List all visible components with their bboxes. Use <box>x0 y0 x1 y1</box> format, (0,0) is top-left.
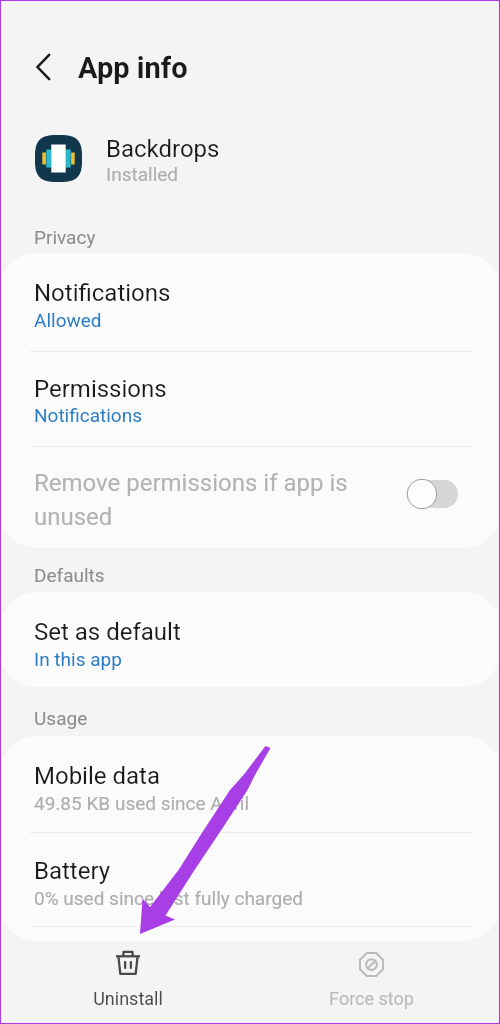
button[interactable]: Set as default <box>0 598 500 676</box>
staticText: Privacy <box>34 226 96 248</box>
staticText: Set as default <box>34 618 181 646</box>
button[interactable]: Permissions <box>0 355 500 433</box>
staticText: Usage <box>34 707 88 729</box>
button[interactable]: Mobile data <box>0 742 500 820</box>
staticText: Uninstall <box>93 988 163 1009</box>
button[interactable]: Force stop <box>289 942 453 1022</box>
staticText: Notifications <box>34 279 171 307</box>
staticText: Allowed <box>34 309 102 331</box>
staticText: Battery <box>34 857 111 885</box>
staticText: Mobile data <box>34 762 160 790</box>
staticText: In this app <box>34 648 122 670</box>
button[interactable]: Battery <box>0 837 500 915</box>
button[interactable]: Uninstall <box>46 942 210 1022</box>
staticText: App info <box>78 51 188 85</box>
staticText: Permissions <box>34 375 167 403</box>
button[interactable]: Notifications <box>0 259 500 337</box>
button[interactable]: Navigate up <box>19 43 67 91</box>
staticText: 0% used since last fully charged <box>34 887 303 909</box>
staticText: Notifications <box>34 404 143 426</box>
staticText: Remove permissions if app is unused <box>34 469 348 531</box>
button[interactable]: Remove permissions if app is unused <box>407 480 458 508</box>
staticText: Defaults <box>34 564 105 586</box>
staticText: 49.85 KB used since April <box>34 792 250 814</box>
staticText: Force stop <box>329 988 414 1009</box>
staticText: Installed <box>106 163 179 185</box>
staticText: Backdrops <box>106 135 220 163</box>
